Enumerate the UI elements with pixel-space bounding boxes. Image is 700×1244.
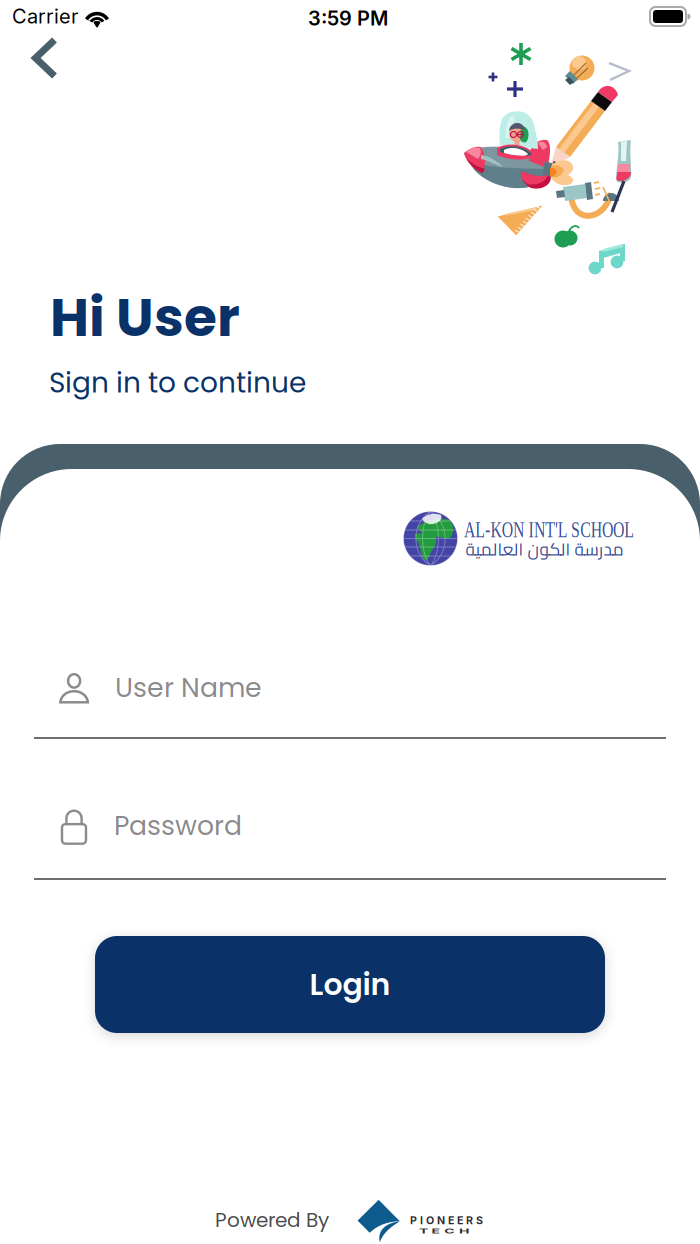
staticText: Hi User — [50, 280, 240, 355]
staticText: User Name — [115, 669, 262, 706]
staticText: AL-KON INT'L SCHOOL — [464, 517, 700, 542]
button[interactable]: Back — [0, 0, 62, 62]
staticText: Login — [309, 963, 390, 1005]
staticText: Sign in to continue — [49, 363, 306, 402]
staticText: T E C H — [419, 1227, 443, 1235]
button[interactable]: Login — [0, 0, 510, 97]
staticText: Carrier — [12, 4, 78, 28]
staticText: مدرسة الكون العالمية — [465, 533, 623, 565]
staticText: Password — [114, 807, 242, 844]
staticText: Powered By — [215, 1206, 329, 1234]
staticText: 3:59 PM — [308, 6, 388, 30]
staticText: P I O N E E R S — [410, 1214, 483, 1227]
